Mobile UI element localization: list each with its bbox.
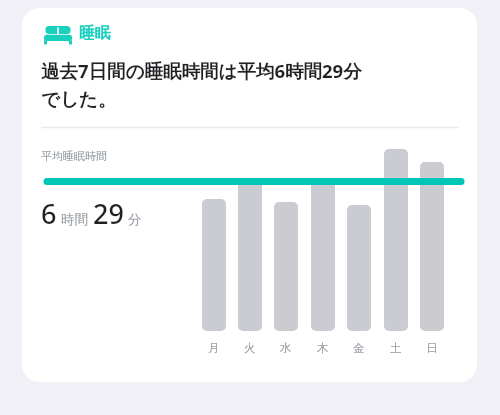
button[interactable]: 睡眠 サマリー カード	[0, 0, 500, 415]
